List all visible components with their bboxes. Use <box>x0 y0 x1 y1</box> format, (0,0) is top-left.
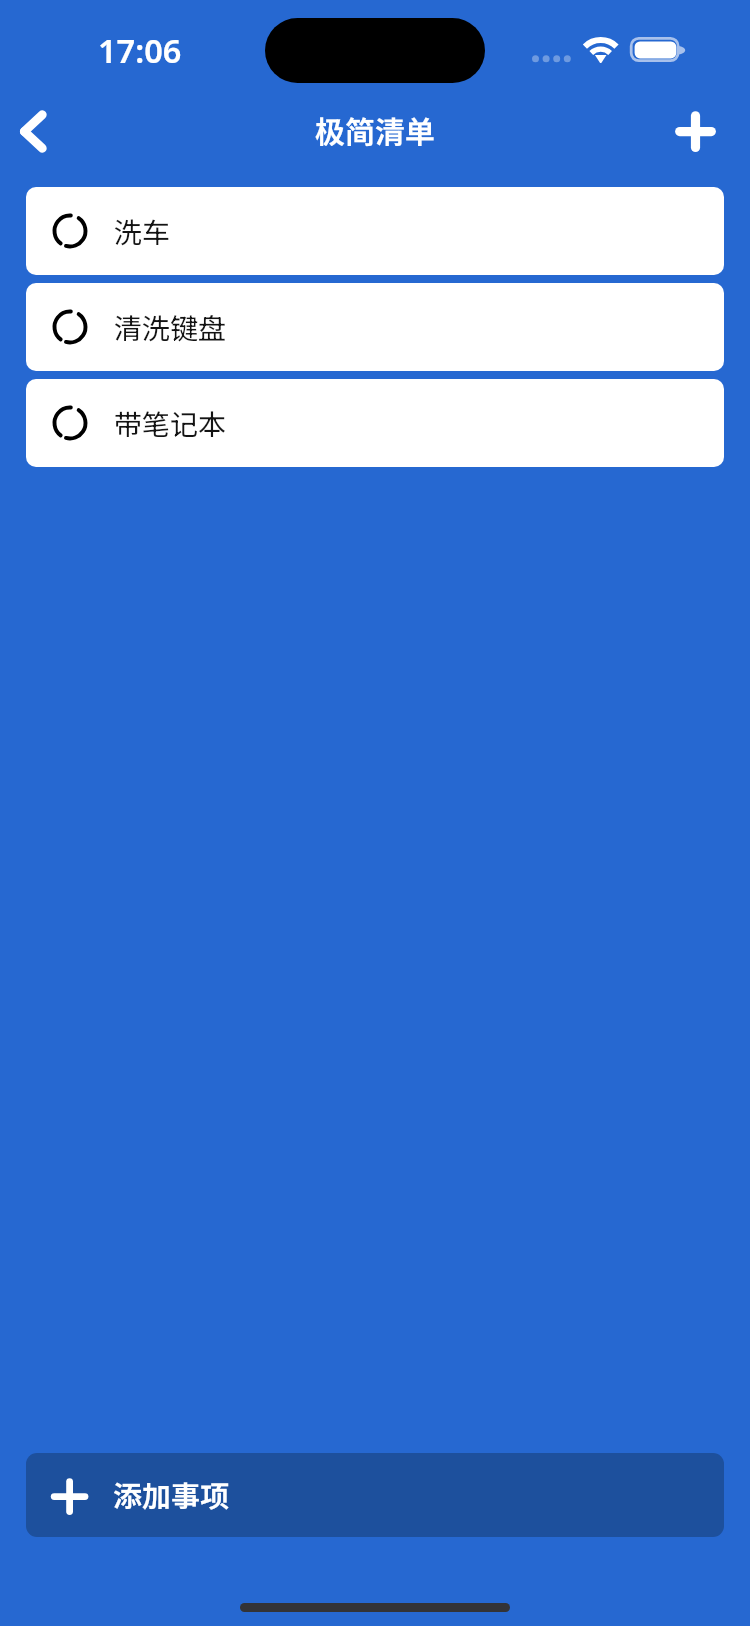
button[interactable]: Back <box>0 96 78 174</box>
staticText: 添加事项 <box>113 1473 230 1515</box>
button[interactable]: 清洗键盘 <box>26 283 724 371</box>
staticText: 带笔记本 <box>114 403 227 444</box>
staticText: 17:06 <box>98 28 182 72</box>
staticText: 极简清单 <box>315 108 435 151</box>
button[interactable]: Add item <box>656 96 734 174</box>
button[interactable]: 添加事项 <box>26 1453 724 1537</box>
staticText: 洗车 <box>114 211 171 252</box>
staticText: 清洗键盘 <box>114 307 227 348</box>
button[interactable]: 洗车 <box>26 187 724 275</box>
button[interactable]: 带笔记本 <box>26 379 724 467</box>
